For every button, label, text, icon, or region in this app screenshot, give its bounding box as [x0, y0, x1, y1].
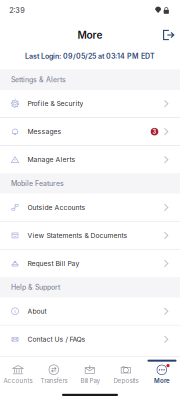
button[interactable]: Deposits — [108, 358, 144, 386]
staticText: View Statements & Documents — [27, 231, 127, 239]
button[interactable]: Manage Alerts — [0, 146, 180, 173]
button[interactable]: View Statements & Documents — [0, 222, 180, 249]
staticText: 2:39 — [9, 6, 25, 15]
button[interactable]: Request Bill Pay — [0, 250, 180, 277]
button[interactable]: Profile & Security — [0, 90, 180, 117]
button[interactable]: Outside Accounts — [0, 194, 180, 221]
staticText: Transfers — [40, 377, 67, 384]
button[interactable]: Sign out — [158, 25, 178, 44]
staticText: More — [154, 377, 170, 384]
staticText: Help & Support — [11, 283, 60, 292]
button[interactable]: Contact Us / FAQs — [0, 326, 180, 353]
staticText: Request Bill Pay — [27, 259, 79, 267]
staticText: Accounts — [3, 377, 32, 384]
staticText: Last Login: 09/05/25 at 03:14 PM EDT — [25, 52, 155, 60]
staticText: About — [27, 307, 46, 315]
button[interactable]: Messages — [0, 118, 180, 145]
button[interactable]: Accounts — [0, 358, 36, 386]
staticText: Manage Alerts — [27, 155, 75, 164]
staticText: Contact Us / FAQs — [27, 335, 85, 343]
staticText: Outside Accounts — [27, 203, 85, 211]
staticText: Settings & Alerts — [11, 76, 66, 84]
button[interactable]: About — [0, 298, 180, 325]
staticText: More — [77, 29, 102, 41]
staticText: Bill Pay — [80, 377, 99, 384]
staticText: 3 — [152, 128, 156, 135]
staticText: Profile & Security — [27, 99, 83, 108]
button[interactable]: Transfers — [36, 358, 72, 386]
staticText: Messages — [27, 127, 61, 136]
button[interactable]: More — [144, 358, 180, 386]
staticText: Mobile Features — [11, 179, 64, 188]
staticText: Deposits — [113, 377, 138, 384]
button[interactable]: Bill Pay — [72, 358, 108, 386]
